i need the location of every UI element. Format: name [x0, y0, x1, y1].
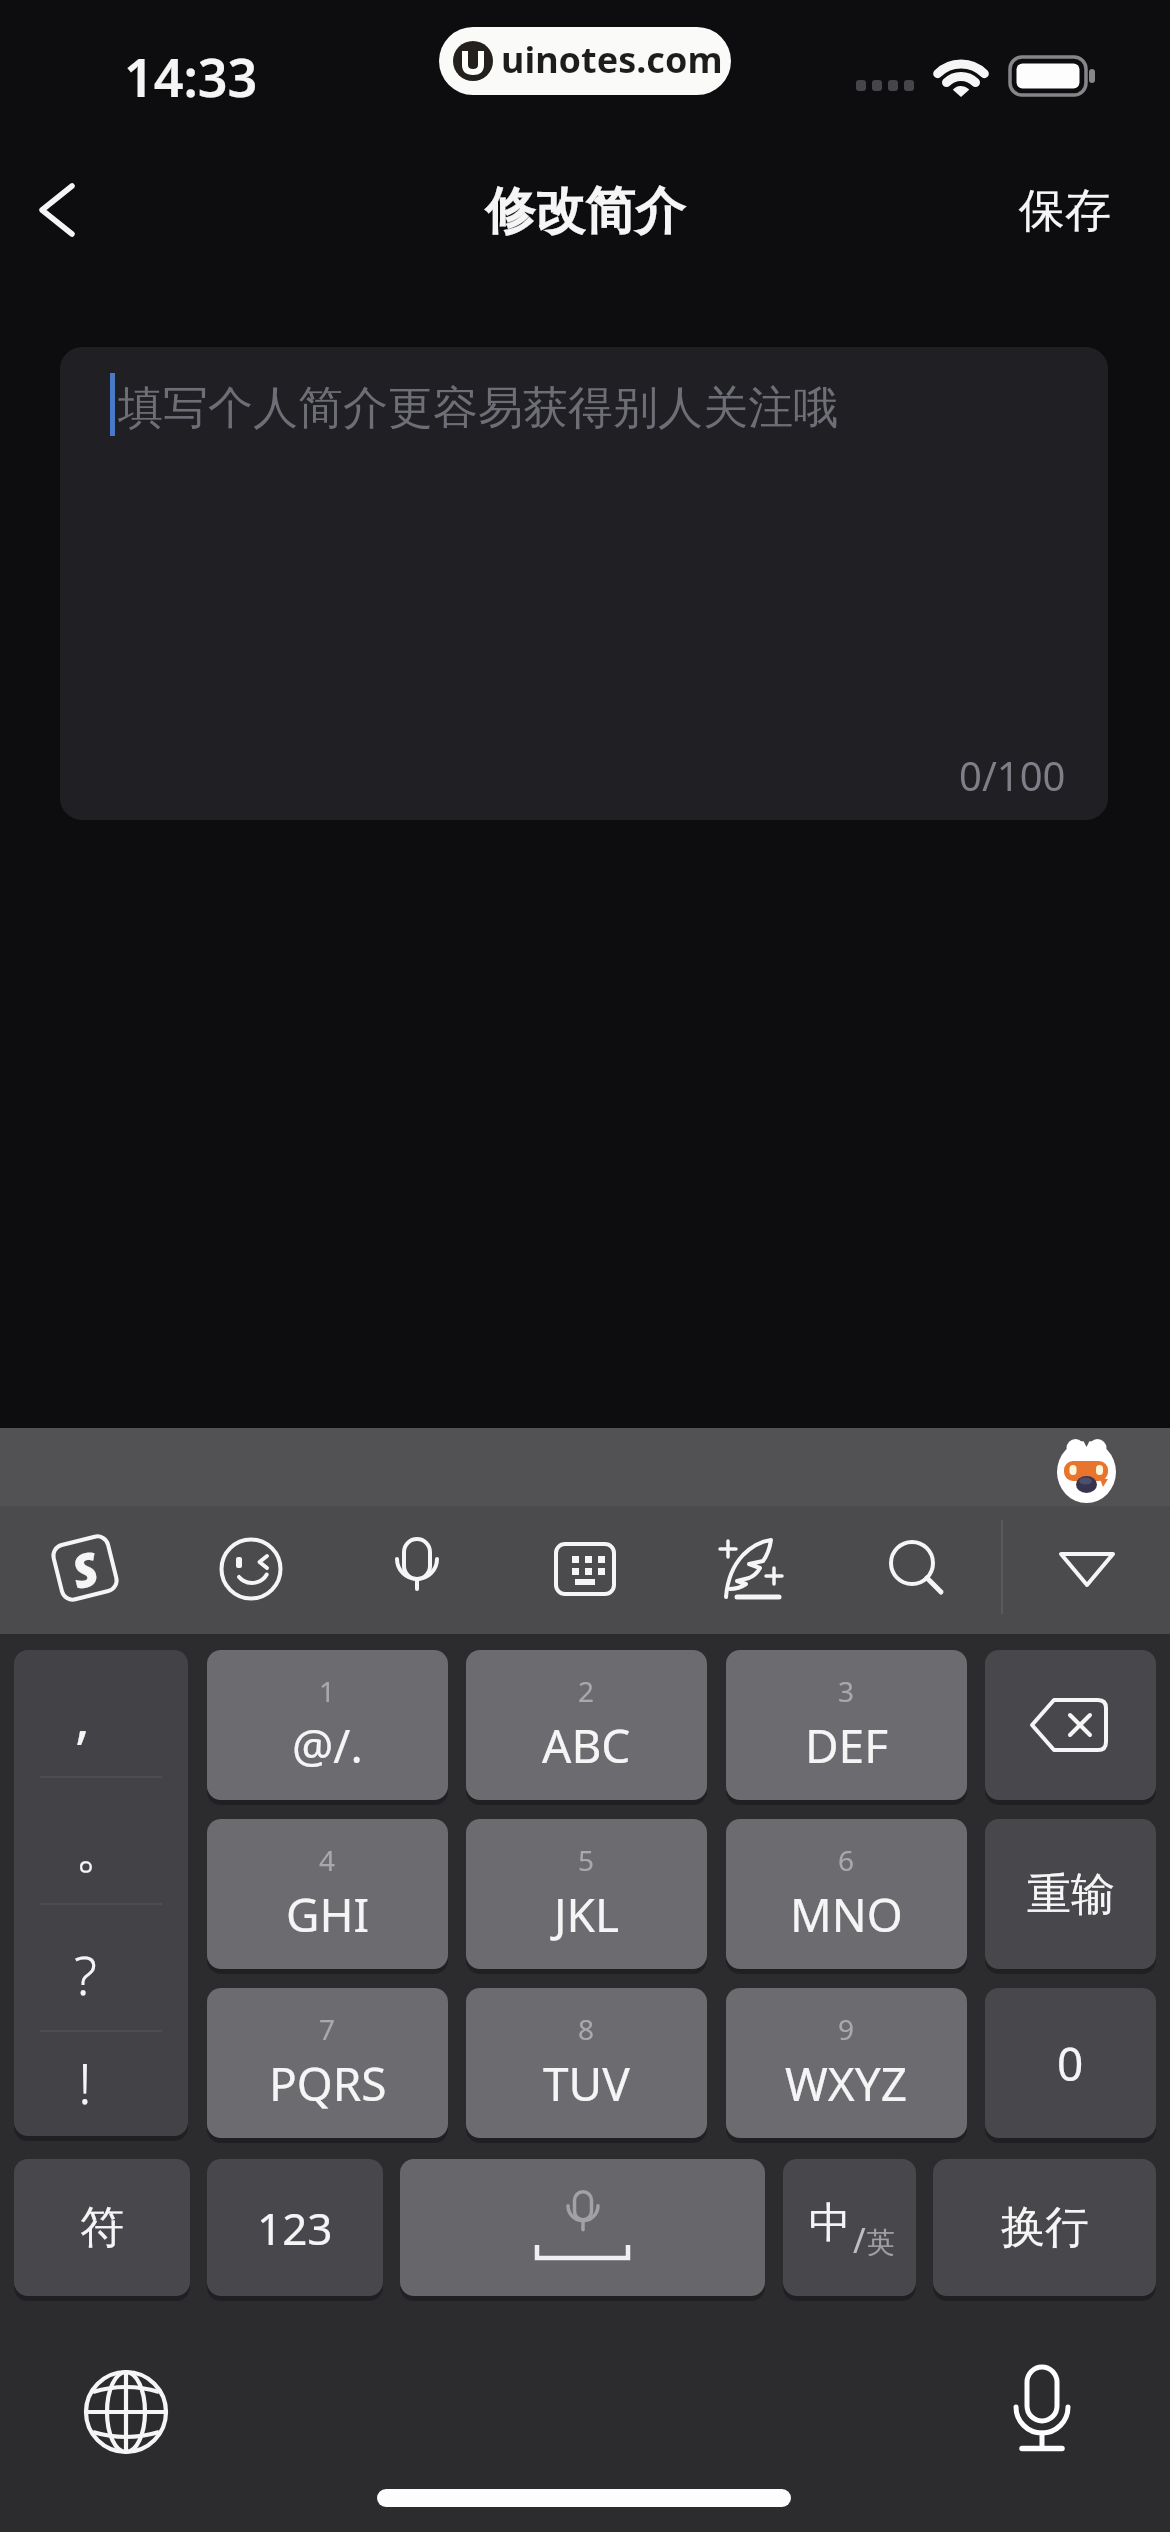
staticText: 2 — [578, 1672, 595, 1710]
staticText: ABC — [542, 1714, 631, 1777]
staticText: ? — [74, 1937, 97, 2011]
button[interactable] — [713, 1531, 789, 1607]
staticText: 6 — [838, 1841, 855, 1879]
staticText: DEF — [805, 1714, 889, 1777]
staticText: 填写个人简介更容易获得别人关注哦 — [118, 380, 838, 437]
staticText: GHI — [286, 1883, 370, 1946]
staticText: 9 — [838, 2010, 855, 2048]
button[interactable]: 5 — [466, 1819, 707, 1969]
button[interactable]: 8 — [466, 1988, 707, 2138]
button[interactable]: 中 — [783, 2159, 916, 2296]
button[interactable]: uinotes.com — [439, 27, 731, 95]
staticText: 0/100 — [959, 748, 1066, 802]
button[interactable] — [549, 1533, 621, 1605]
staticText: 5 — [578, 1841, 595, 1879]
button[interactable] — [985, 1650, 1156, 1800]
staticText: uinotes.com — [501, 35, 723, 84]
staticText: ! — [78, 2044, 92, 2120]
staticText: 英 — [867, 2225, 895, 2260]
staticText: 重输 — [1027, 1867, 1115, 1922]
staticText: 1 — [319, 1672, 336, 1710]
button[interactable]: 1 — [207, 1650, 448, 1800]
button[interactable]: 重输 — [985, 1819, 1156, 1969]
button[interactable]: 填写个人简介更容易获得别人关注哦 — [60, 347, 1108, 820]
button[interactable]: 保存 — [990, 166, 1140, 256]
staticText: 。 — [75, 1817, 127, 1883]
button[interactable]: 6 — [726, 1819, 967, 1969]
button[interactable] — [879, 1530, 951, 1602]
staticText: 保存 — [1019, 182, 1111, 240]
staticText: JKL — [554, 1883, 620, 1946]
button[interactable]: 7 — [207, 1988, 448, 2138]
button[interactable]: 换行 — [933, 2159, 1156, 2296]
button[interactable] — [215, 1533, 287, 1605]
button[interactable] — [400, 2159, 765, 2296]
staticText: @/. — [292, 1714, 363, 1777]
button[interactable] — [76, 2362, 176, 2462]
staticText: 14:33 — [124, 41, 258, 112]
staticText: 中 — [809, 2197, 851, 2250]
button[interactable]: 123 — [207, 2159, 383, 2296]
button[interactable]: 2 — [466, 1650, 707, 1800]
staticText: 7 — [319, 2010, 336, 2048]
staticText: PQRS — [269, 2052, 387, 2115]
staticText: / — [853, 2217, 866, 2263]
button[interactable] — [381, 1532, 453, 1604]
staticText: 修改简介 — [485, 180, 685, 243]
staticText: 4 — [319, 1841, 336, 1879]
staticText: MNO — [790, 1883, 903, 1946]
button[interactable]: S — [49, 1532, 121, 1604]
staticText: 换行 — [1001, 2200, 1089, 2255]
button[interactable]: 符 — [14, 2159, 190, 2296]
staticText: TUV — [543, 2052, 630, 2115]
button[interactable]: 0 — [985, 1988, 1156, 2138]
button[interactable] — [1049, 1536, 1125, 1600]
button[interactable]: 4 — [207, 1819, 448, 1969]
staticText: 8 — [578, 2010, 595, 2048]
button[interactable]: 3 — [726, 1650, 967, 1800]
staticText: WXYZ — [785, 2052, 908, 2115]
staticText: 123 — [257, 2198, 333, 2258]
button[interactable] — [992, 2355, 1092, 2455]
staticText: , — [75, 1678, 91, 1754]
button[interactable] — [14, 160, 114, 260]
staticText: 符 — [80, 2200, 124, 2255]
staticText: 3 — [838, 1672, 855, 1710]
button[interactable] — [14, 1650, 188, 2136]
staticText: 0 — [1057, 2032, 1084, 2095]
button[interactable]: 9 — [726, 1988, 967, 2138]
staticText: S — [65, 1536, 105, 1600]
